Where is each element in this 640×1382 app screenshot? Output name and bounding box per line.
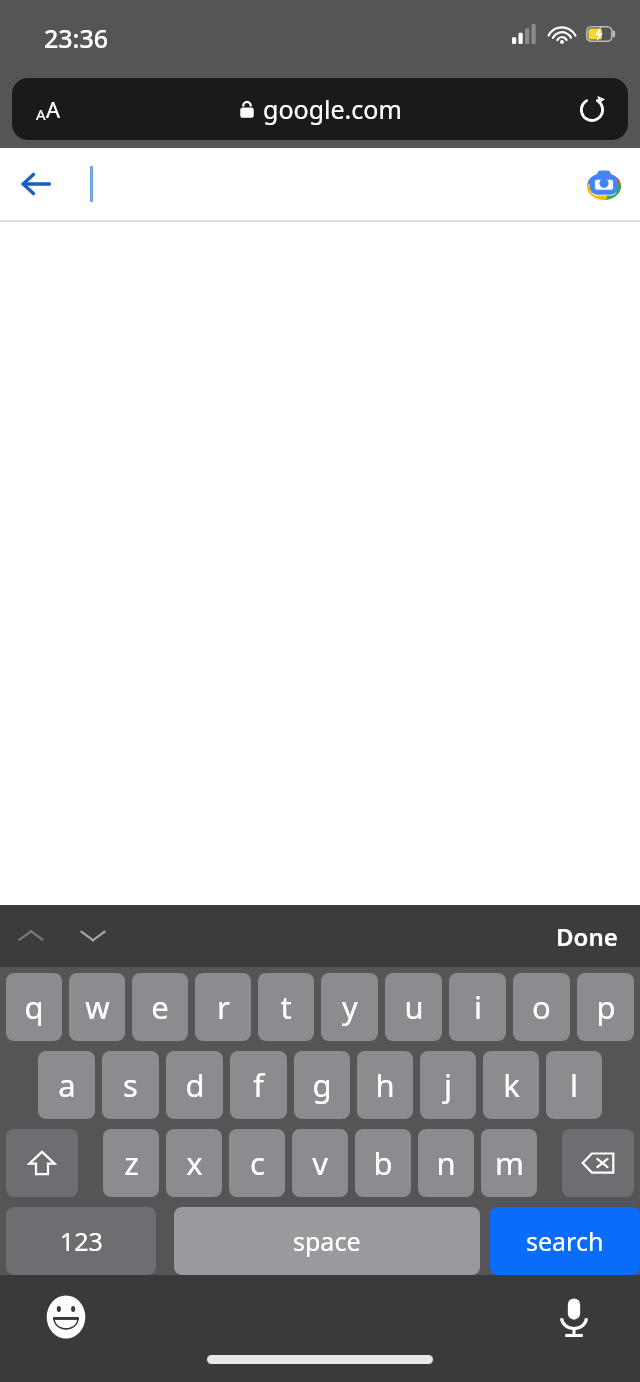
staticText: a	[58, 1064, 76, 1106]
staticText: n	[436, 1142, 456, 1184]
staticText: 123	[60, 1224, 103, 1258]
button[interactable]: g	[294, 1051, 350, 1119]
button[interactable]: space	[174, 1207, 480, 1275]
button[interactable]: s	[102, 1051, 159, 1119]
button[interactable]: v	[292, 1129, 348, 1197]
staticText: m	[495, 1142, 524, 1184]
button[interactable]: a	[38, 1051, 95, 1119]
button[interactable]: Text size	[12, 78, 84, 140]
staticText: q	[24, 986, 44, 1028]
button[interactable]: Previous field	[0, 905, 62, 967]
staticText: A	[36, 104, 46, 124]
button[interactable]: u	[385, 973, 442, 1041]
staticText: r	[217, 986, 230, 1028]
button[interactable]: c	[229, 1129, 285, 1197]
staticText: w	[85, 986, 110, 1028]
button[interactable]: h	[357, 1051, 413, 1119]
staticText: u	[404, 986, 424, 1028]
staticText: j	[444, 1064, 452, 1106]
staticText: f	[253, 1064, 264, 1106]
button[interactable]: z	[103, 1129, 159, 1197]
staticText: y	[342, 986, 358, 1028]
staticText: h	[375, 1064, 395, 1106]
button[interactable]: d	[166, 1051, 223, 1119]
button[interactable]: Done	[556, 905, 618, 967]
button[interactable]: 123	[6, 1207, 156, 1275]
staticText: e	[151, 986, 169, 1028]
button[interactable]: w	[69, 973, 125, 1041]
button[interactable]: o	[513, 973, 570, 1041]
button[interactable]: k	[483, 1051, 539, 1119]
button[interactable]: Emoji	[30, 1281, 102, 1353]
staticText: A	[46, 94, 61, 124]
button[interactable]: Reload	[556, 78, 628, 140]
staticText: o	[532, 986, 551, 1028]
button[interactable]: i	[449, 973, 506, 1041]
staticText: v	[312, 1142, 328, 1184]
button[interactable]: f	[230, 1051, 287, 1119]
staticText: k	[503, 1064, 520, 1106]
button[interactable]: t	[258, 973, 314, 1041]
staticText: s	[123, 1064, 138, 1106]
button[interactable]: Backspace	[562, 1129, 634, 1197]
button[interactable]: b	[355, 1129, 411, 1197]
staticText: i	[474, 986, 482, 1028]
button[interactable]: Next field	[62, 905, 124, 967]
button[interactable]: Dictation	[538, 1281, 610, 1353]
button[interactable]: m	[481, 1129, 537, 1197]
staticText: l	[570, 1064, 578, 1106]
button[interactable]: Text size	[12, 78, 628, 140]
staticText: search	[526, 1224, 604, 1258]
staticText: space	[293, 1224, 361, 1258]
staticText: Done	[556, 920, 618, 953]
button[interactable]: Search by image	[568, 148, 640, 220]
staticText: t	[280, 986, 292, 1028]
button[interactable]: y	[321, 973, 378, 1041]
staticText: z	[124, 1142, 139, 1184]
button[interactable]: Shift	[6, 1129, 78, 1197]
staticText: c	[250, 1142, 265, 1184]
staticText: x	[186, 1142, 203, 1184]
staticText: 23:36	[44, 21, 109, 55]
button[interactable]: search	[490, 1207, 640, 1275]
button[interactable]: x	[166, 1129, 222, 1197]
button[interactable]: q	[6, 973, 62, 1041]
button[interactable]: n	[418, 1129, 474, 1197]
staticText: d	[185, 1064, 205, 1106]
staticText: g	[312, 1064, 332, 1106]
button[interactable]: l	[546, 1051, 602, 1119]
staticText: b	[373, 1142, 393, 1184]
button[interactable]: p	[577, 973, 634, 1041]
button[interactable]	[72, 148, 568, 220]
button[interactable]: Back	[0, 148, 72, 220]
button[interactable]: r	[195, 973, 251, 1041]
staticText: google.com	[263, 92, 402, 126]
staticText: p	[596, 986, 616, 1028]
button[interactable]: j	[420, 1051, 476, 1119]
button[interactable]: e	[132, 973, 188, 1041]
